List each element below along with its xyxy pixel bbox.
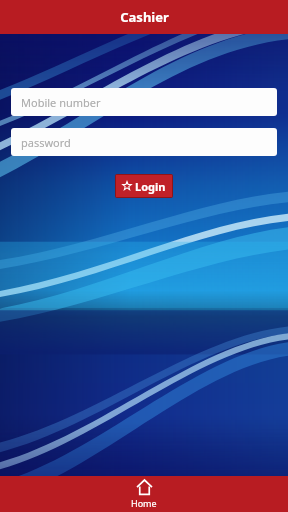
button[interactable]: Login — [116, 175, 172, 197]
staticText: Login — [135, 179, 166, 194]
staticText: password — [21, 135, 71, 150]
staticText: Mobile number — [21, 95, 101, 110]
button[interactable]: password — [11, 128, 277, 156]
button[interactable]: Mobile number — [11, 88, 277, 116]
staticText: Cashier — [120, 8, 169, 26]
button[interactable]: Home — [113, 476, 175, 512]
staticText: Home — [131, 497, 157, 509]
